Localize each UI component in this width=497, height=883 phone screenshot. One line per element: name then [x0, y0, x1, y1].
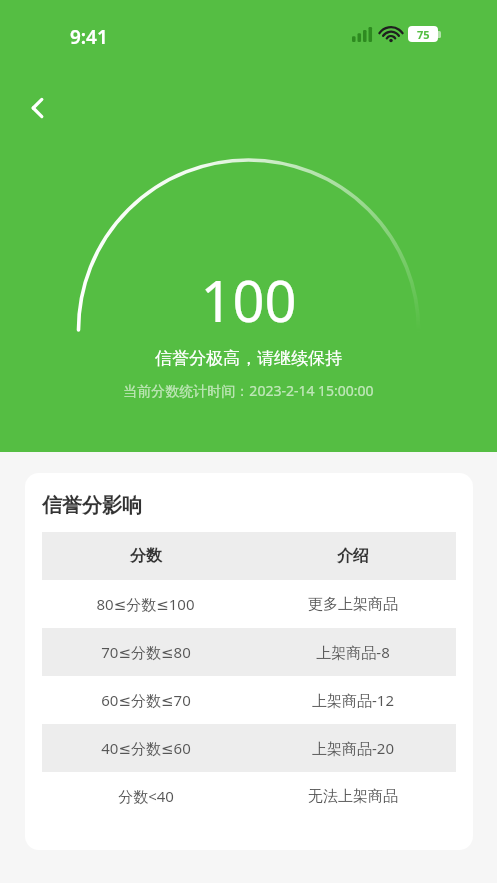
staticText: 60≤分数≤70: [101, 690, 191, 710]
button[interactable]: 分数: [42, 532, 456, 580]
staticText: 上架商品-12: [312, 690, 394, 710]
staticText: 9:41: [70, 24, 108, 50]
staticText: 上架商品-8: [316, 642, 390, 662]
staticText: 70≤分数≤80: [101, 642, 191, 662]
button[interactable]: 60≤分数≤70: [42, 676, 456, 724]
staticText: 75: [417, 27, 430, 42]
staticText: 100: [200, 262, 297, 338]
button[interactable]: 40≤分数≤60: [42, 724, 456, 772]
staticText: 80≤分数≤100: [96, 594, 195, 614]
staticText: 分数<40: [118, 786, 174, 806]
staticText: 当前分数统计时间：2023-2-14 15:00:00: [123, 381, 374, 400]
staticText: 上架商品-20: [312, 738, 394, 758]
button[interactable]: 70≤分数≤80: [42, 628, 456, 676]
staticText: 信誉分影响: [42, 493, 142, 518]
staticText: 介绍: [337, 546, 369, 566]
button[interactable]: 分数<40: [42, 772, 456, 820]
staticText: 更多上架商品: [308, 595, 398, 614]
button[interactable]: Back: [14, 84, 62, 132]
staticText: 分数: [130, 546, 162, 566]
staticText: 信誉分极高，请继续保持: [155, 348, 342, 369]
button[interactable]: 80≤分数≤100: [42, 580, 456, 628]
staticText: 40≤分数≤60: [101, 738, 191, 758]
staticText: 无法上架商品: [308, 787, 398, 806]
